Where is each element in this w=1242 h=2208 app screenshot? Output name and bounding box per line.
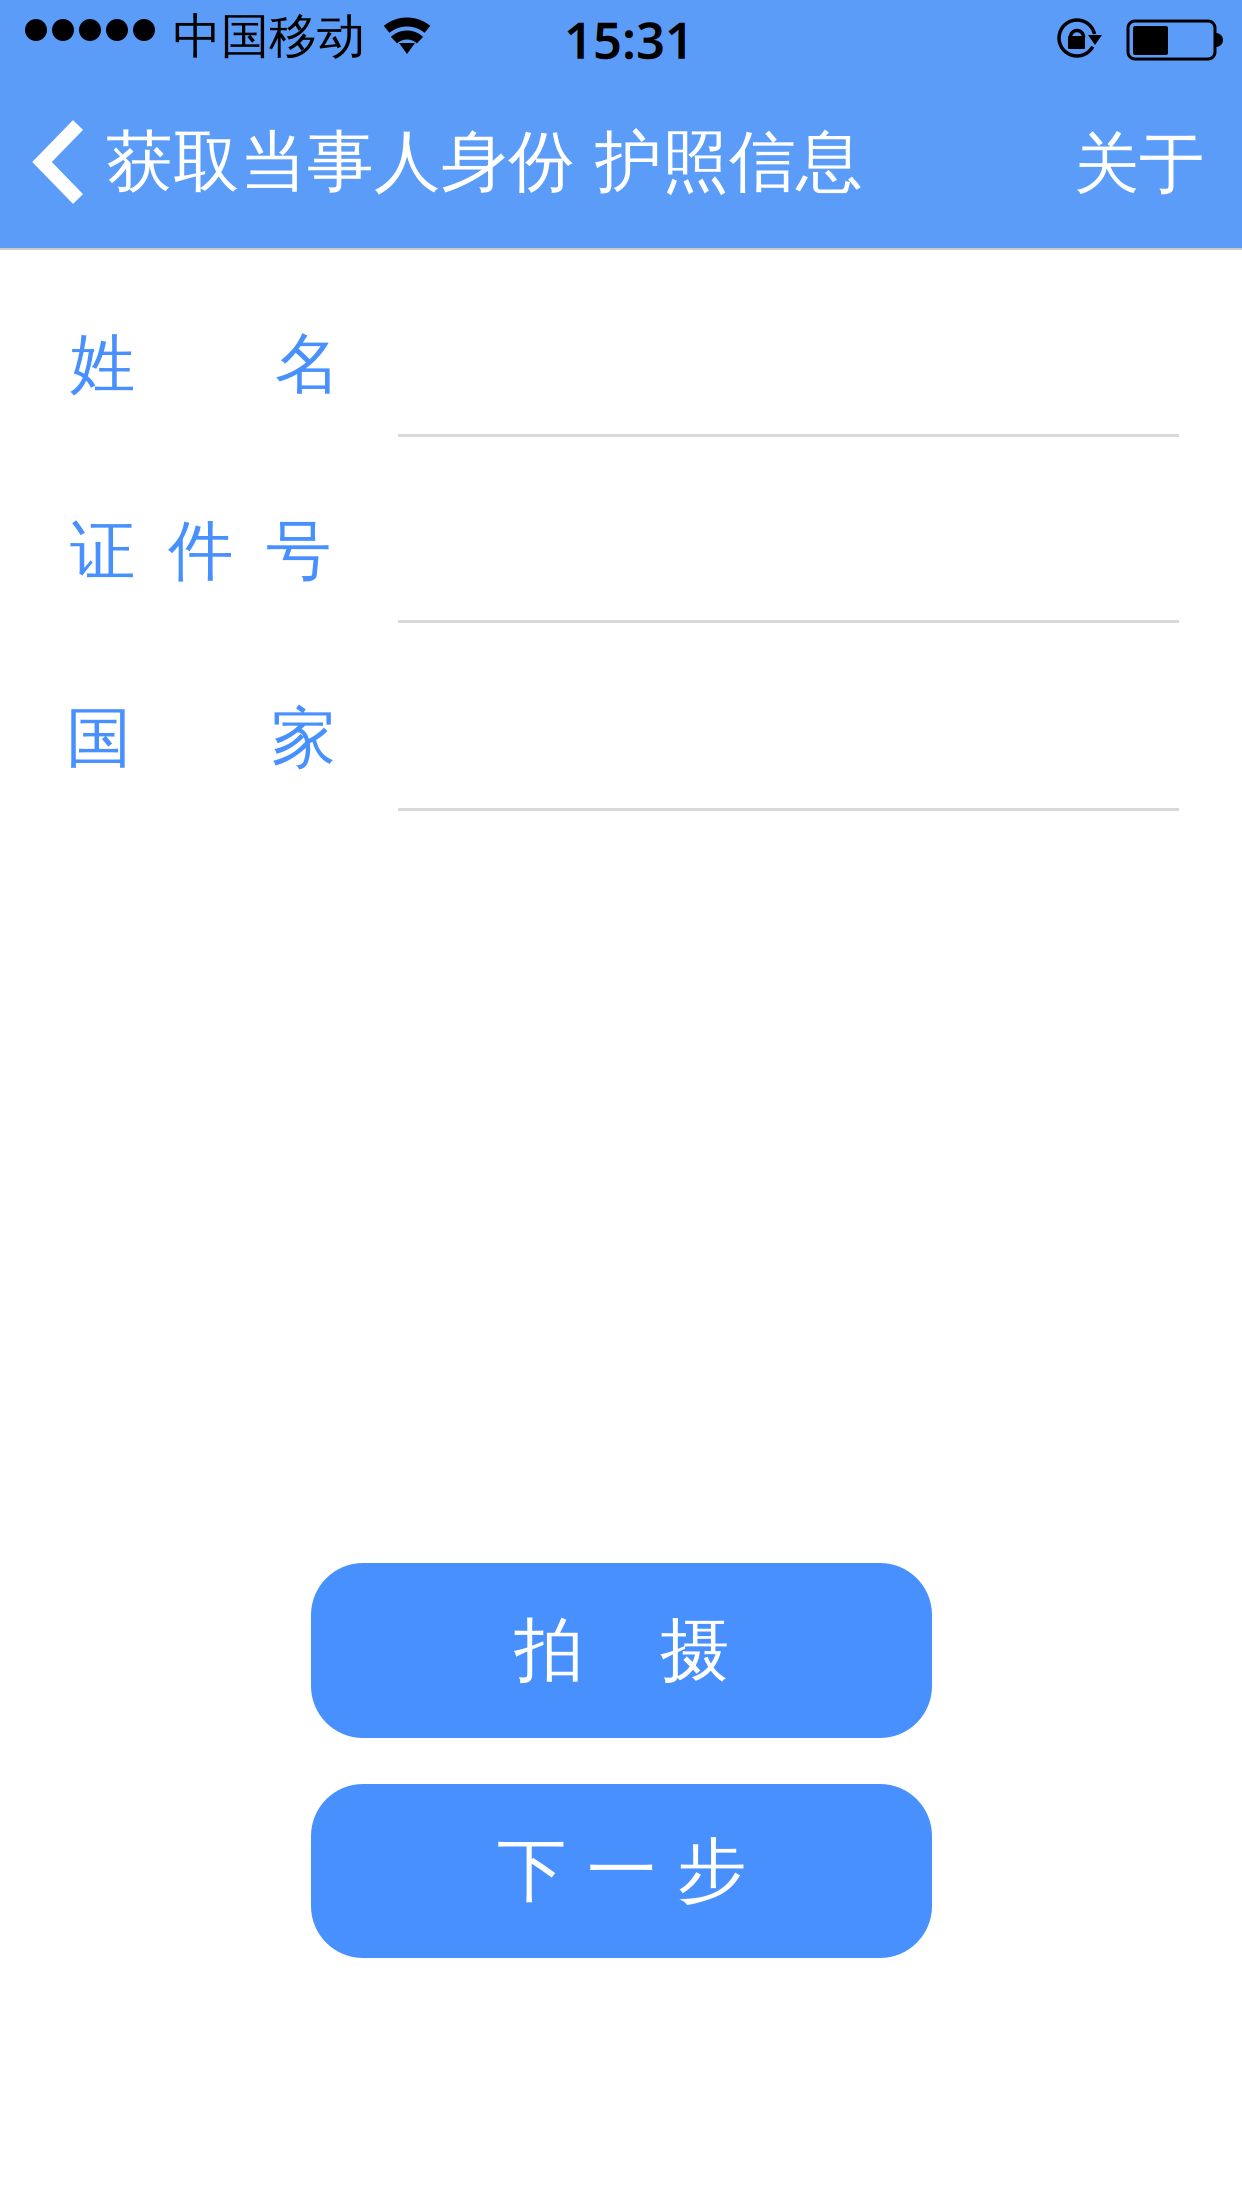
button[interactable]: 关于 <box>1039 60 1239 248</box>
staticText: 中国移动 <box>173 7 365 66</box>
staticText: 拍 摄 <box>514 1608 729 1693</box>
staticText: 证 件 号 <box>70 511 331 591</box>
staticText: 获取当事人身份 护照信息 <box>106 121 863 203</box>
staticText: 关于 <box>1074 124 1204 204</box>
staticText: 15:31 <box>564 5 694 73</box>
button[interactable]: 返回 <box>0 60 910 248</box>
staticText: 姓 名 <box>70 324 340 404</box>
staticText: 国 家 <box>66 698 336 778</box>
button[interactable]: 下 一 步 <box>311 1784 932 1958</box>
button[interactable]: 拍 摄 <box>311 1563 932 1738</box>
staticText: 下 一 步 <box>497 1828 746 1914</box>
